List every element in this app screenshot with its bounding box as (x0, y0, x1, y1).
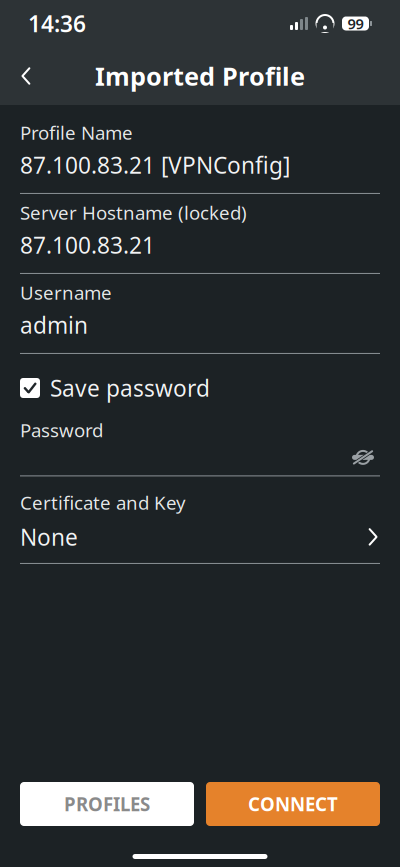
staticText: Profile Name (20, 120, 133, 145)
button[interactable]: Certificate and Key (20, 494, 380, 560)
staticText: 87.100.83.21 (20, 230, 155, 260)
button[interactable]: Save password (20, 375, 380, 401)
button[interactable]: Show password (346, 445, 380, 469)
staticText: Username (20, 280, 112, 305)
staticText: Save password (50, 373, 210, 403)
staticText: admin (20, 310, 88, 340)
staticText: Password (20, 418, 103, 442)
staticText: Imported Profile (95, 59, 305, 93)
staticText: 14:36 (28, 8, 86, 38)
staticText: Certificate and Key (20, 490, 186, 515)
staticText: Server Hostname (locked) (20, 200, 247, 225)
staticText: CONNECT (248, 792, 338, 816)
staticText: PROFILES (64, 792, 150, 816)
button[interactable]: CONNECT (206, 782, 380, 826)
button[interactable]: PROFILES (20, 782, 194, 826)
staticText: 87.100.83.21 [VPNConfig] (20, 150, 290, 180)
staticText: 99 (347, 14, 363, 33)
button[interactable]: Back (0, 47, 52, 105)
staticText: None (20, 522, 78, 552)
